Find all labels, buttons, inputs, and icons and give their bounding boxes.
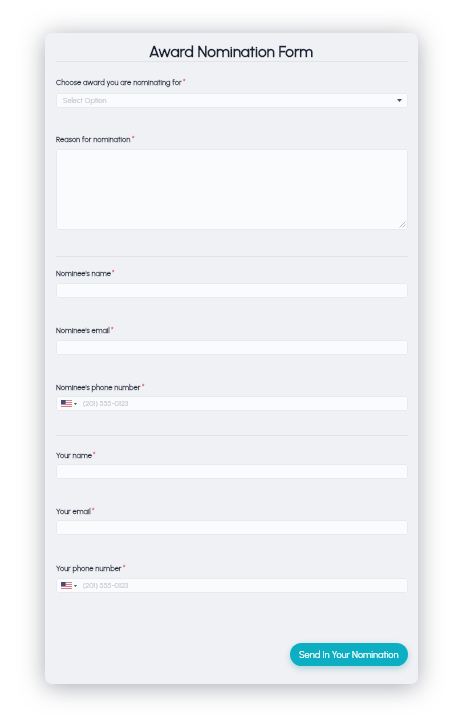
other: Select country code: United States [61, 400, 72, 407]
staticText: Send In Your Nomination [299, 649, 399, 660]
staticText: (201) 555-0123 [83, 581, 129, 590]
staticText: Award Nomination Form [149, 42, 314, 61]
staticText: * [92, 506, 95, 514]
staticText: * [183, 77, 186, 85]
staticText: Select Option [63, 96, 107, 105]
staticText: Your phone number [56, 564, 122, 573]
button[interactable]: Select country code: United States [56, 578, 408, 593]
staticText: Choose award you are nominating for [56, 78, 182, 87]
staticText: Your name [56, 451, 92, 460]
other: Select country code: United States [61, 582, 72, 589]
button[interactable] [56, 283, 408, 298]
button[interactable]: Send In Your Nomination [290, 643, 408, 666]
staticText: Nominee's email [56, 326, 110, 335]
staticText: Nominee's name [56, 269, 111, 278]
staticText: * [132, 134, 135, 142]
staticText: * [142, 382, 145, 390]
staticText: * [112, 268, 115, 276]
button[interactable]: Select Option [56, 93, 408, 108]
button[interactable] [56, 464, 408, 479]
staticText: * [93, 450, 96, 458]
button[interactable] [56, 340, 408, 355]
staticText: Nominee's phone number [56, 383, 141, 392]
staticText: * [123, 563, 126, 571]
button[interactable] [56, 149, 408, 230]
staticText: Your email [56, 507, 91, 516]
button[interactable]: Select country code: United States [56, 396, 408, 411]
staticText: Reason for nomination [56, 135, 131, 144]
staticText: * [111, 325, 114, 333]
staticText: (201) 555-0123 [83, 399, 129, 408]
button[interactable] [56, 520, 408, 535]
